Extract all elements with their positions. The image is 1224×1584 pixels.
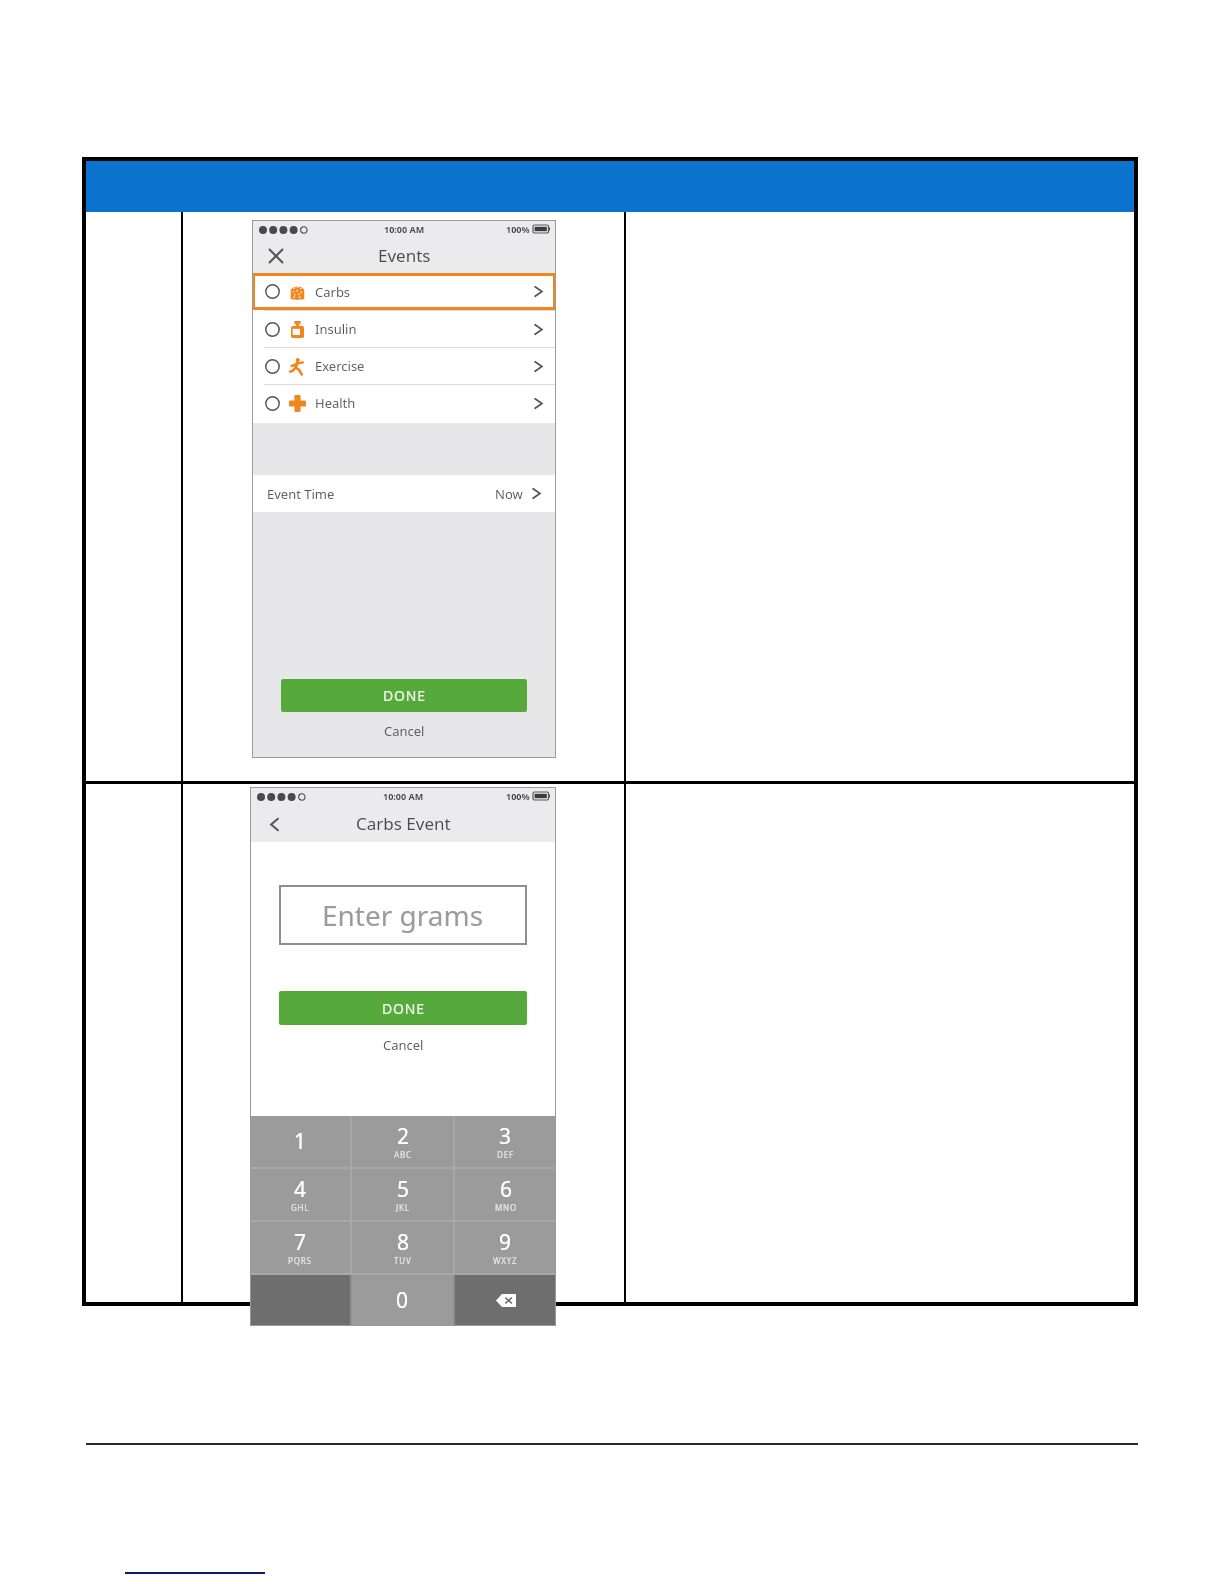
staticText: 7	[294, 1228, 307, 1257]
button[interactable]: Event Time	[252, 475, 556, 512]
button[interactable]: Exercise	[252, 348, 556, 384]
staticText: 100%	[506, 790, 530, 802]
button[interactable]: DONE	[279, 991, 527, 1025]
staticText: 0	[396, 1286, 409, 1315]
button[interactable]: 5	[352, 1169, 453, 1220]
staticText: GHL	[291, 1202, 310, 1213]
button[interactable]: Back	[263, 813, 285, 835]
staticText: DONE	[383, 686, 426, 705]
button[interactable]: 2	[352, 1116, 453, 1167]
button[interactable]: Backspace	[455, 1275, 556, 1326]
staticText: Enter grams	[322, 896, 484, 934]
staticText: 9	[499, 1228, 512, 1257]
button[interactable]: Insulin	[252, 311, 556, 347]
button[interactable]: Cancel	[361, 1033, 446, 1057]
button[interactable]: 7	[250, 1222, 350, 1273]
staticText: Event Time	[267, 485, 335, 503]
staticText: Events	[378, 244, 431, 267]
staticText: Now	[495, 485, 523, 503]
button[interactable]: Health	[252, 385, 556, 421]
button[interactable]: 4	[250, 1169, 350, 1220]
staticText: 10:00 AM	[384, 223, 425, 235]
staticText: TUV	[394, 1255, 412, 1266]
staticText: Carbs	[315, 283, 351, 301]
staticText: 4	[294, 1175, 307, 1204]
staticText: ABC	[394, 1149, 412, 1160]
staticText: Carbs Event	[356, 812, 451, 835]
staticText: 100%	[506, 223, 530, 235]
button[interactable]: Carbs	[252, 273, 556, 310]
button[interactable]: Cancel	[362, 719, 447, 743]
staticText: 2	[397, 1122, 410, 1151]
button[interactable]: 3	[455, 1116, 556, 1167]
staticText: Exercise	[315, 357, 365, 375]
staticText: MNO	[495, 1202, 517, 1213]
staticText: Insulin	[315, 320, 357, 338]
staticText: Health	[315, 394, 356, 412]
staticText: 3	[499, 1122, 512, 1151]
button[interactable]	[250, 1275, 350, 1326]
staticText: 1	[294, 1127, 307, 1156]
staticText: 8	[397, 1228, 410, 1257]
button[interactable]: Enter grams	[279, 885, 527, 945]
staticText: 10:00 AM	[383, 790, 424, 802]
button[interactable]: Close	[264, 244, 288, 268]
staticText: JKL	[396, 1202, 410, 1213]
staticText: 6	[500, 1175, 513, 1204]
button[interactable]: 6	[455, 1169, 556, 1220]
staticText: DEF	[497, 1149, 514, 1160]
staticText: DONE	[382, 999, 425, 1018]
staticText: Cancel	[384, 722, 425, 740]
button[interactable]: 0	[352, 1275, 453, 1326]
button[interactable]: 8	[352, 1222, 453, 1273]
staticText: PQRS	[288, 1255, 312, 1266]
button[interactable]: DONE	[281, 679, 527, 712]
staticText: 5	[397, 1175, 410, 1204]
staticText: WXYZ	[493, 1255, 518, 1266]
staticText: Cancel	[383, 1036, 424, 1054]
button[interactable]: 9	[455, 1222, 556, 1273]
button[interactable]: 1	[250, 1116, 350, 1167]
